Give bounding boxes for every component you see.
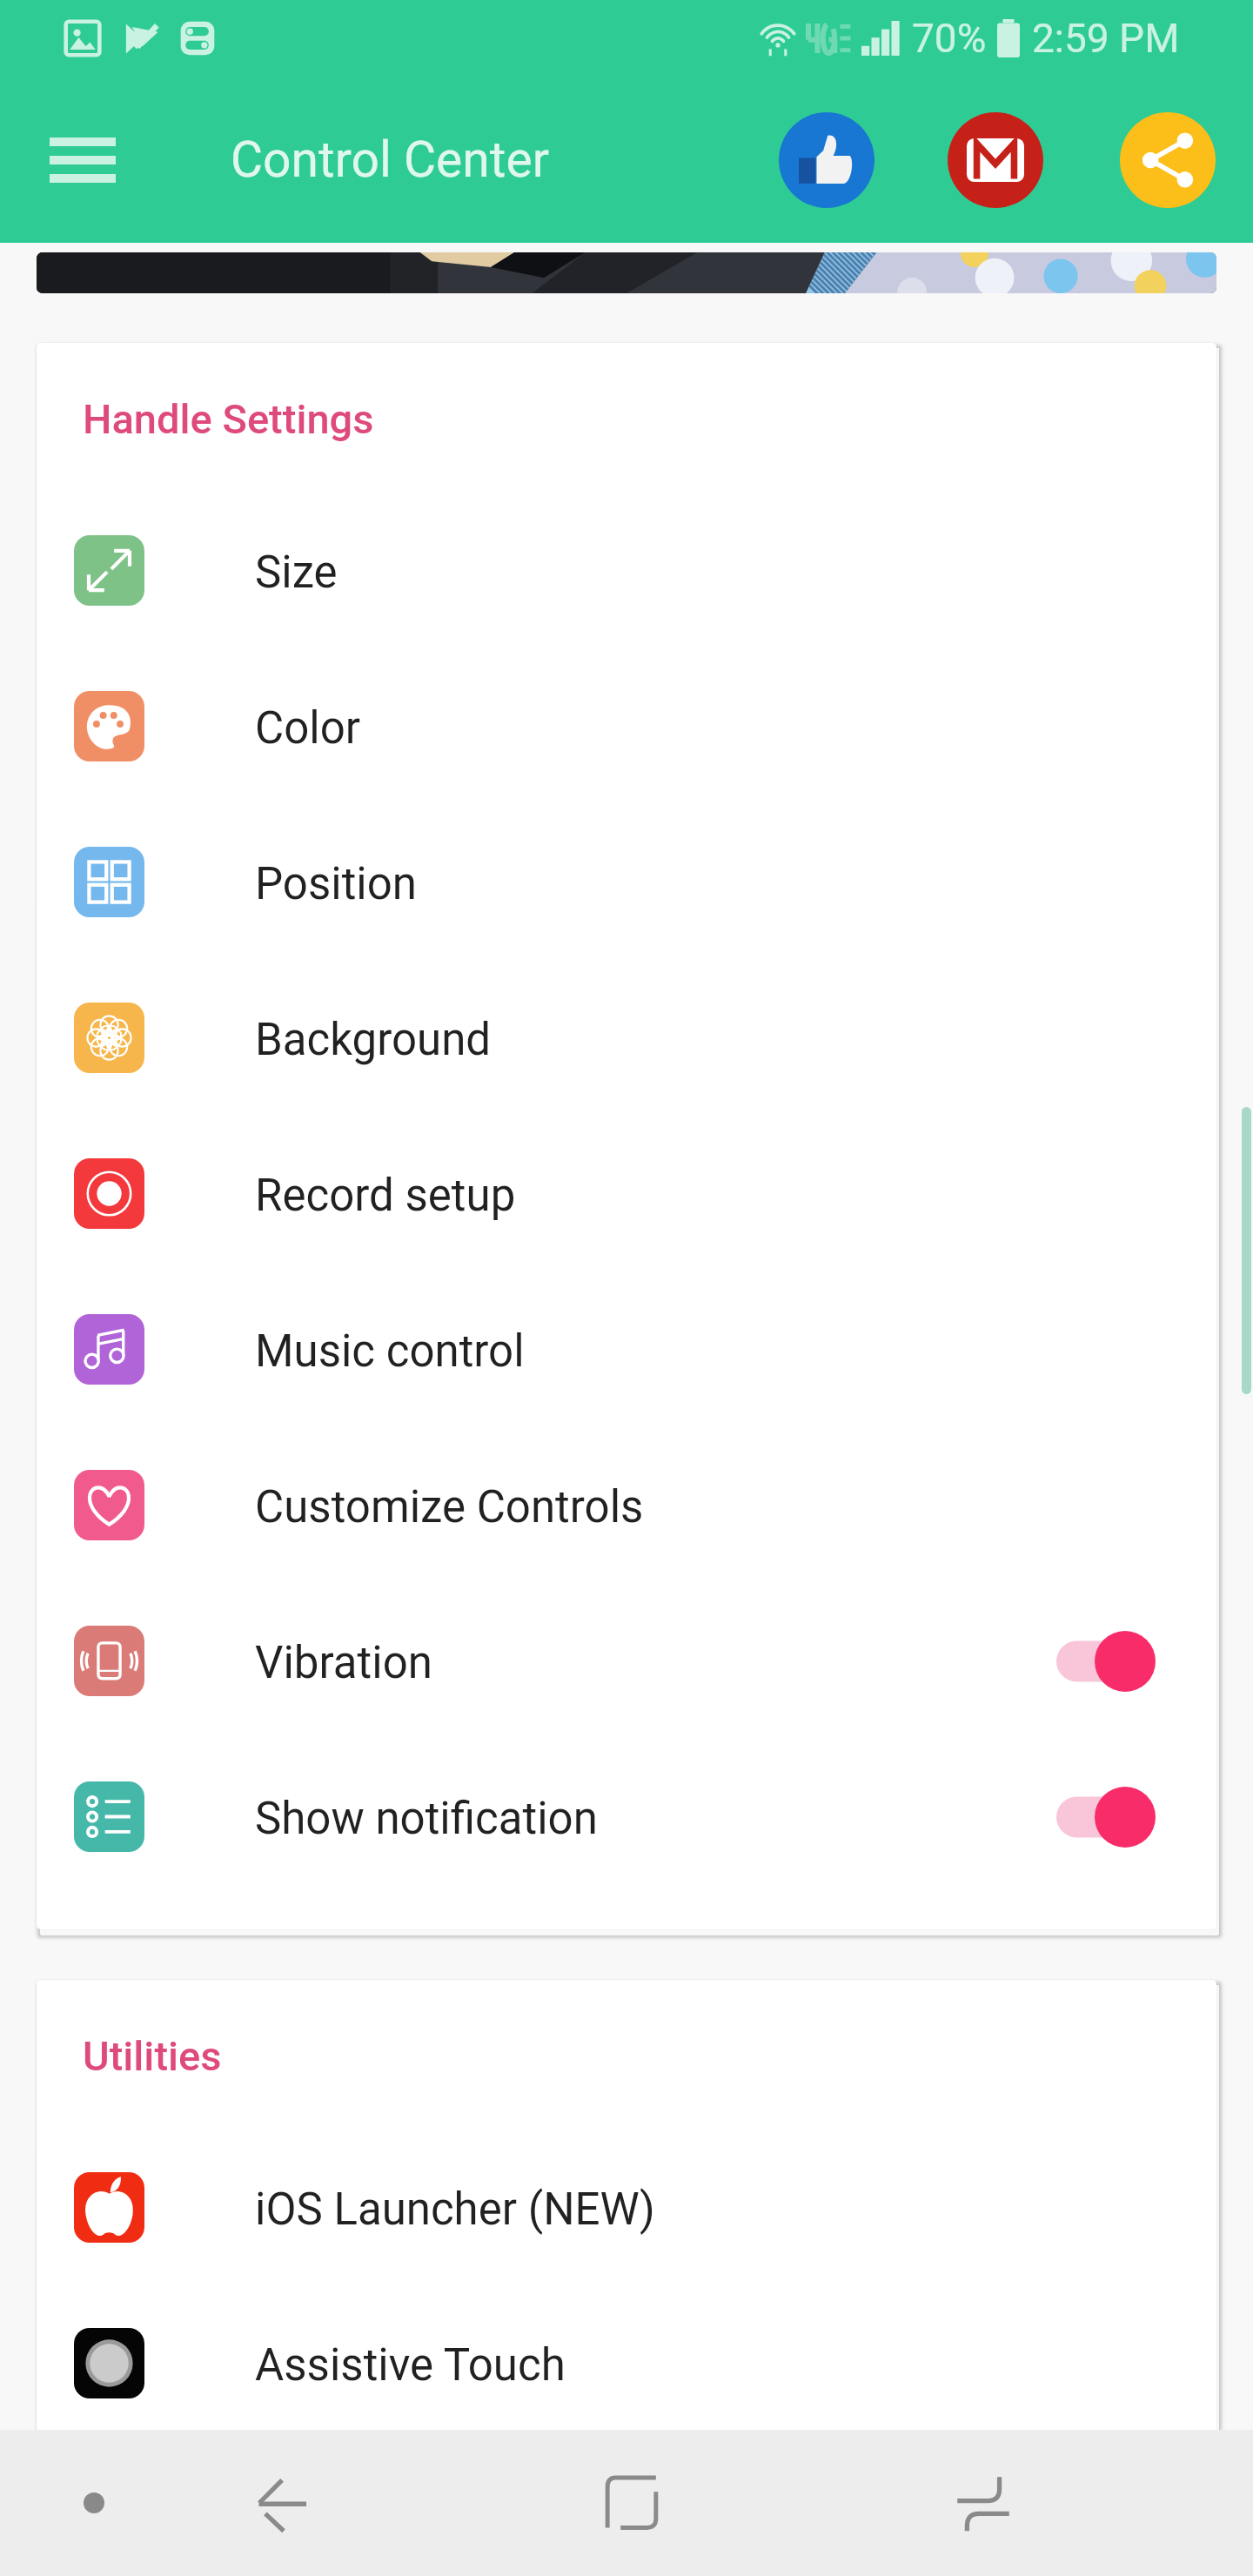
staticText: 2:59 PM: [1032, 15, 1180, 62]
staticText: Assistive Touch: [255, 2339, 566, 2392]
button[interactable]: Position: [37, 804, 1216, 960]
staticText: Vibration: [255, 1637, 432, 1689]
staticText: 70%: [912, 15, 987, 62]
staticText: Handle Settings: [83, 395, 374, 443]
button[interactable]: Assistive Touch: [37, 2285, 1216, 2441]
staticText: Size: [255, 547, 338, 599]
staticText: Record setup: [255, 1170, 516, 1222]
staticText: Show notification: [255, 1793, 598, 1845]
button[interactable]: Recent apps: [929, 2449, 1037, 2557]
staticText: Control Center: [231, 131, 549, 189]
button[interactable]: Show keyboard: [42, 2451, 146, 2555]
button[interactable]: Color: [37, 648, 1216, 804]
staticText: Color: [255, 702, 361, 755]
button[interactable]: Home: [578, 2449, 686, 2557]
button[interactable]: Send email: [913, 77, 1078, 243]
staticText: Position: [255, 858, 417, 910]
button[interactable]: Back: [230, 2449, 338, 2557]
button[interactable]: iOS Launcher (NEW): [37, 2130, 1216, 2285]
button[interactable]: Vibration: [37, 1583, 1216, 1739]
button[interactable]: Open navigation menu: [26, 104, 139, 217]
button[interactable]: Show notification: [37, 1739, 1216, 1895]
button[interactable]: Music control: [37, 1271, 1216, 1427]
button[interactable]: Background: [37, 960, 1216, 1116]
staticText: Music control: [255, 1325, 525, 1378]
staticText: iOS Launcher (NEW): [255, 2184, 655, 2236]
staticText: Customize Controls: [255, 1481, 644, 1533]
staticText: Utilities: [83, 2032, 222, 2080]
button[interactable]: Size: [37, 493, 1216, 648]
button[interactable]: Like on Facebook: [744, 77, 909, 243]
staticText: Background: [255, 1014, 492, 1066]
button[interactable]: Share: [1085, 77, 1250, 243]
button[interactable]: Customize Controls: [37, 1427, 1216, 1583]
button[interactable]: Record setup: [37, 1116, 1216, 1271]
button[interactable]: Promotional banner image: [37, 252, 1216, 293]
